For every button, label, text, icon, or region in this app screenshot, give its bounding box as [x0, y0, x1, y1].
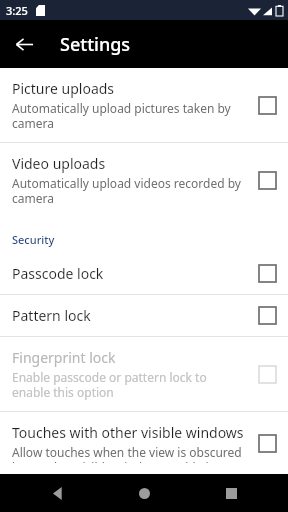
staticText: Touches with other visible windows	[12, 423, 244, 442]
staticText: Security	[12, 232, 55, 247]
staticText: Fingerprint lock	[12, 348, 116, 367]
staticText: Enable passcode or pattern lock to enabl…	[12, 369, 247, 400]
button[interactable]: Back	[40, 476, 74, 510]
staticText: Pattern lock	[12, 306, 91, 325]
staticText: Picture uploads	[12, 79, 115, 98]
staticText: Settings	[60, 32, 131, 57]
button[interactable]: Fingerprint lock	[0, 337, 288, 411]
button[interactable]: Back	[6, 26, 42, 62]
button[interactable]: Picture uploads	[0, 68, 288, 142]
button[interactable]: Pattern lock	[0, 295, 288, 336]
staticText: Automatically upload videos recorded by …	[12, 175, 247, 206]
staticText: Allow touches when the view is obscured …	[12, 444, 247, 463]
staticText: Passcode lock	[12, 264, 104, 283]
button[interactable]: Touches with other visible windows	[0, 412, 288, 474]
button[interactable]: Passcode lock	[0, 253, 288, 294]
staticText: 3:25	[6, 3, 28, 18]
button[interactable]: Video uploads	[0, 143, 288, 217]
button[interactable]: Recents	[214, 476, 248, 510]
staticText: Video uploads	[12, 154, 106, 173]
button[interactable]: Home	[127, 476, 161, 510]
staticText: Automatically upload pictures taken by c…	[12, 100, 247, 131]
